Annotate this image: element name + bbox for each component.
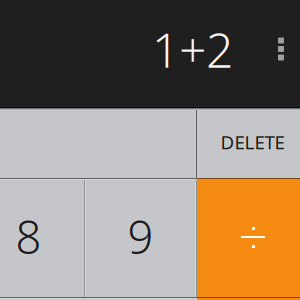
button[interactable]: More options — [269, 36, 293, 62]
staticText: 8 — [15, 206, 41, 267]
staticText: 9 — [127, 206, 153, 267]
button[interactable]: 8 — [0, 180, 84, 297]
button[interactable]: 9 — [84, 180, 196, 297]
staticText: 1+2 — [152, 17, 233, 81]
button[interactable]: Divide — [196, 180, 300, 297]
staticText: DELETE — [220, 130, 284, 154]
button[interactable]: DELETE — [196, 110, 300, 178]
